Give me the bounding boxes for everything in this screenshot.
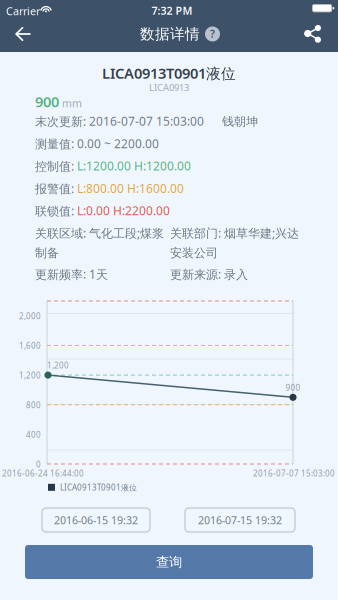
staticText: 1,600 [19,340,41,351]
staticText: 1,200 [47,360,69,371]
button[interactable]: Help [205,26,220,41]
staticText: 关联区域: 气化工段;煤浆 [35,225,164,241]
staticText: 1,200 [19,370,41,381]
button[interactable]: 2016-06-15 19:32 [42,508,150,532]
staticText: Carrier [6,4,40,18]
staticText: 联锁值: [35,203,77,219]
staticText: 更新来源: 录入 [170,266,248,282]
staticText: 2016-07-07 15:03:00 钱朝坤 [89,113,258,129]
staticText: 2016-07-07 15:03:00 [253,468,335,479]
staticText: 0 [36,459,41,470]
staticText: 2016-06-24 16:44:00 [2,468,84,479]
staticText: 末次更新: [35,113,89,129]
staticText: LICA0913 [149,81,189,94]
staticText: 数据详情 [140,25,200,43]
staticText: 7:32 PM [151,4,192,18]
staticText: 0.00 ~ 2200.00 [77,135,159,151]
button[interactable]: 查询 [25,545,313,579]
staticText: 安装公司 [170,246,218,260]
staticText: 900 [35,92,59,111]
staticText: 查询 [156,554,182,570]
staticText: ? [210,26,215,41]
staticText: LICA0913T0901液位 [102,63,236,83]
staticText: 800 [26,400,41,410]
staticText: LICA0913T0901液位 [60,482,137,493]
staticText: 900 [285,382,300,393]
staticText: 2,000 [19,311,41,321]
staticText: 关联部门: 烟草华建;兴达 [170,225,299,241]
staticText: L:0.00 H:2200.00 [77,203,170,219]
button[interactable]: Share [294,18,332,50]
staticText: 400 [26,429,41,440]
staticText: 制备 [35,246,59,260]
staticText: L:800.00 H:1600.00 [77,180,184,196]
button[interactable]: 2016-07-15 19:32 [185,508,295,532]
staticText: 报警值: [35,180,77,196]
staticText: 测量值: [35,136,77,152]
staticText: mm [62,96,82,110]
staticText: 2016-06-15 19:32 [54,513,138,527]
button[interactable]: Back [4,18,42,50]
staticText: 2016-07-15 19:32 [198,513,282,527]
staticText: L:1200.00 H:1200.00 [77,158,191,174]
staticText: 更新频率: 1天 [35,266,108,282]
staticText: 控制值: [35,158,77,174]
